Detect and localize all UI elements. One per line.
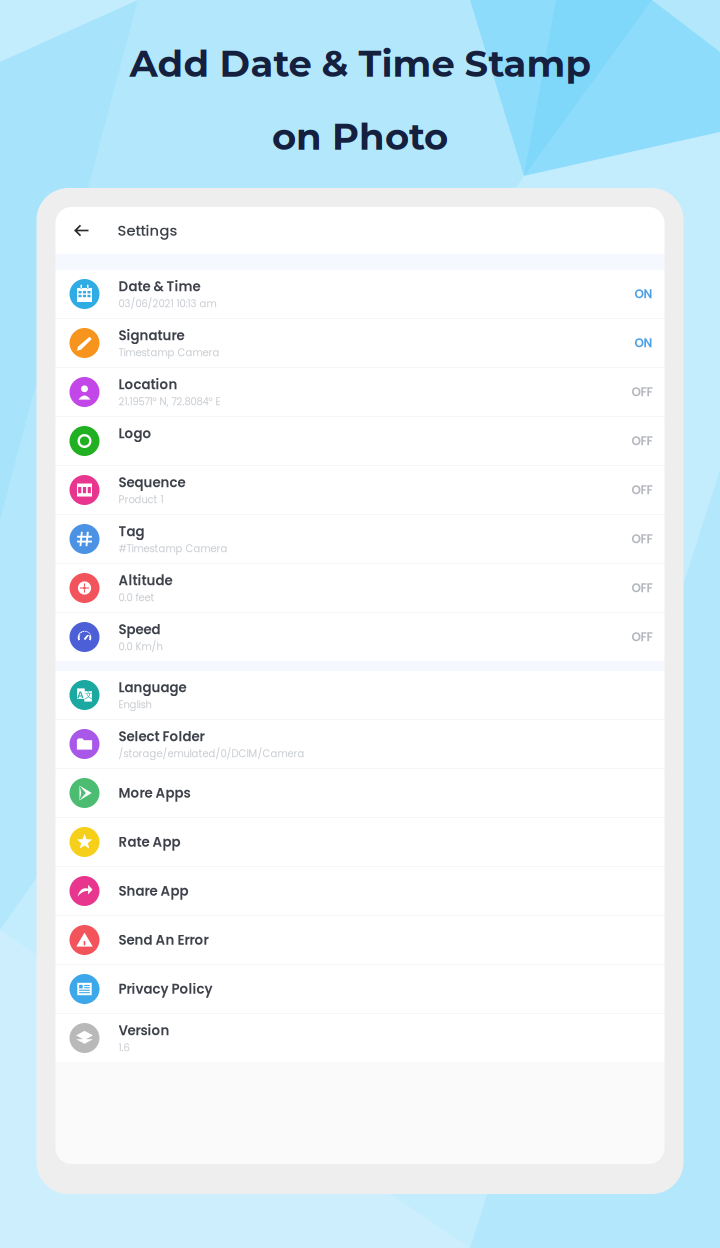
- staticText: 0.0 feet: [118, 591, 154, 605]
- button[interactable]: Privacy Policy: [55, 965, 664, 1013]
- staticText: 21.19571° N, 72.8084° E: [118, 395, 220, 409]
- button[interactable]: Version: [55, 1014, 664, 1062]
- button[interactable]: Tag: [55, 515, 664, 563]
- staticText: 0.0 Km/h: [118, 640, 162, 654]
- button[interactable]: Back: [66, 215, 96, 245]
- staticText: Timestamp Camera: [118, 346, 219, 360]
- staticText: A: [77, 689, 84, 701]
- staticText: on Photo: [272, 114, 448, 159]
- staticText: Altitude: [118, 571, 172, 590]
- button[interactable]: Send An Error: [55, 916, 664, 964]
- staticText: Select Folder: [118, 727, 204, 746]
- staticText: English: [118, 698, 151, 712]
- staticText: /storage/emulated/0/DCIM/Camera: [118, 747, 304, 761]
- staticText: Signature: [118, 326, 184, 345]
- staticText: Speed: [118, 620, 160, 639]
- staticText: OFF: [631, 482, 652, 498]
- button[interactable]: Speed: [55, 613, 664, 661]
- staticText: Version: [118, 1021, 169, 1040]
- staticText: OFF: [631, 580, 652, 596]
- button[interactable]: Select Folder: [55, 720, 664, 768]
- button[interactable]: Altitude: [55, 564, 664, 612]
- staticText: Product 1: [118, 493, 163, 507]
- staticText: OFF: [631, 531, 652, 547]
- staticText: Send An Error: [118, 931, 208, 949]
- staticText: Language: [118, 678, 186, 697]
- staticText: 1.6: [118, 1041, 129, 1055]
- button[interactable]: Location: [55, 368, 664, 416]
- button[interactable]: More Apps: [55, 769, 664, 817]
- staticText: Tag: [118, 522, 144, 541]
- button[interactable]: Share App: [55, 867, 664, 915]
- staticText: Location: [118, 375, 177, 394]
- staticText: Settings: [117, 220, 177, 241]
- staticText: Share App: [118, 882, 188, 900]
- staticText: Rate App: [118, 833, 180, 851]
- button[interactable]: Signature: [55, 319, 664, 367]
- staticText: Date & Time: [118, 277, 200, 296]
- button[interactable]: Logo: [55, 417, 664, 465]
- staticText: 文: [84, 690, 92, 700]
- staticText: 03/06/2021 10:13 am: [118, 297, 216, 311]
- staticText: ON: [634, 335, 652, 351]
- staticText: Add Date & Time Stamp: [129, 41, 590, 86]
- staticText: OFF: [631, 384, 652, 400]
- staticText: Sequence: [118, 473, 185, 492]
- staticText: OFF: [631, 433, 652, 449]
- button[interactable]: Date & Time: [55, 270, 664, 318]
- button[interactable]: Rate App: [55, 818, 664, 866]
- staticText: #Timestamp Camera: [118, 542, 227, 556]
- staticText: Logo: [118, 424, 151, 443]
- staticText: OFF: [631, 629, 652, 645]
- staticText: More Apps: [118, 784, 190, 802]
- staticText: ON: [634, 286, 652, 302]
- button[interactable]: A: [55, 671, 664, 719]
- button[interactable]: Sequence: [55, 466, 664, 514]
- staticText: Privacy Policy: [118, 980, 212, 998]
